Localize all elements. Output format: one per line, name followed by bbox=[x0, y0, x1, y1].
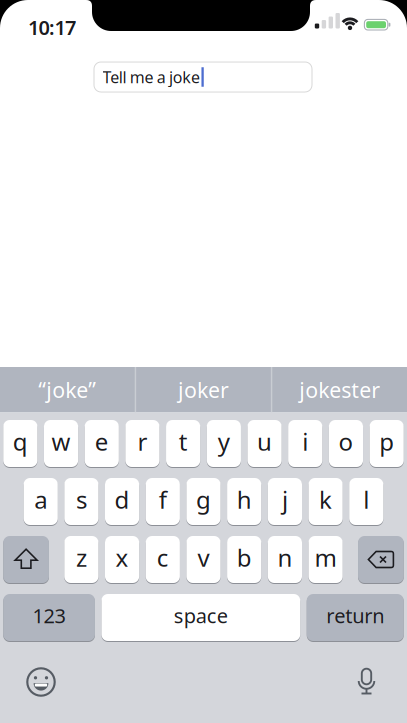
button[interactable]: c bbox=[146, 536, 180, 583]
button[interactable]: r bbox=[125, 420, 160, 467]
staticText: e bbox=[95, 426, 109, 457]
button[interactable]: Emoji bbox=[19, 660, 63, 704]
staticText: d bbox=[115, 484, 130, 515]
staticText: space bbox=[174, 602, 228, 629]
button[interactable]: m bbox=[308, 536, 343, 583]
staticText: jokester bbox=[299, 376, 380, 404]
staticText: m bbox=[315, 542, 337, 573]
button[interactable]: joker bbox=[136, 367, 271, 412]
staticText: z bbox=[76, 542, 87, 573]
staticText: y bbox=[218, 426, 230, 457]
staticText: joker bbox=[178, 376, 229, 404]
staticText: 123 bbox=[33, 602, 66, 629]
button[interactable]: z bbox=[64, 536, 98, 583]
staticText: w bbox=[52, 426, 71, 457]
button[interactable]: v bbox=[186, 536, 221, 583]
button[interactable]: x bbox=[105, 536, 139, 583]
button[interactable]: d bbox=[105, 478, 139, 525]
button[interactable]: s bbox=[64, 478, 98, 525]
button[interactable]: f bbox=[146, 478, 180, 525]
staticText: k bbox=[319, 484, 332, 515]
button[interactable]: b bbox=[227, 536, 261, 583]
button[interactable]: t bbox=[166, 420, 200, 467]
button[interactable]: Tell me a joke bbox=[94, 62, 312, 92]
staticText: a bbox=[34, 484, 47, 515]
staticText: i bbox=[302, 426, 308, 457]
button[interactable]: h bbox=[227, 478, 261, 525]
staticText: f bbox=[159, 484, 167, 515]
staticText: u bbox=[257, 426, 272, 457]
button[interactable]: return bbox=[307, 594, 404, 641]
staticText: c bbox=[157, 542, 169, 573]
button[interactable]: y bbox=[207, 420, 241, 467]
button[interactable]: u bbox=[247, 420, 282, 467]
staticText: t bbox=[179, 426, 188, 457]
staticText: b bbox=[237, 542, 252, 573]
button[interactable]: Shift bbox=[3, 536, 49, 583]
button[interactable]: Delete bbox=[358, 536, 404, 583]
button[interactable]: “joke” bbox=[0, 367, 135, 412]
staticText: x bbox=[116, 542, 129, 573]
staticText: 10:17 bbox=[28, 14, 76, 41]
staticText: n bbox=[277, 542, 292, 573]
staticText: p bbox=[379, 426, 394, 457]
button[interactable]: e bbox=[85, 420, 119, 467]
staticText: r bbox=[137, 426, 147, 457]
button[interactable]: a bbox=[24, 478, 58, 525]
staticText: j bbox=[282, 484, 288, 515]
staticText: Tell me a joke bbox=[102, 66, 200, 88]
staticText: v bbox=[197, 542, 209, 573]
staticText: q bbox=[13, 426, 28, 457]
button[interactable]: space bbox=[101, 594, 300, 641]
staticText: return bbox=[326, 602, 384, 629]
staticText: o bbox=[338, 426, 353, 457]
staticText: s bbox=[76, 484, 87, 515]
button[interactable]: l bbox=[349, 478, 383, 525]
staticText: h bbox=[237, 484, 252, 515]
button[interactable]: jokester bbox=[272, 367, 407, 412]
button[interactable]: n bbox=[268, 536, 302, 583]
button[interactable]: g bbox=[186, 478, 221, 525]
staticText: l bbox=[363, 484, 369, 515]
button[interactable]: k bbox=[308, 478, 343, 525]
button[interactable]: j bbox=[268, 478, 302, 525]
button[interactable]: Dictate bbox=[344, 660, 388, 704]
button[interactable]: p bbox=[369, 420, 404, 467]
button[interactable]: w bbox=[44, 420, 78, 467]
button[interactable]: q bbox=[3, 420, 37, 467]
button[interactable]: 123 bbox=[3, 594, 95, 641]
staticText: “joke” bbox=[38, 376, 96, 404]
button[interactable]: o bbox=[329, 420, 363, 467]
staticText: g bbox=[196, 484, 211, 515]
button[interactable]: i bbox=[288, 420, 322, 467]
